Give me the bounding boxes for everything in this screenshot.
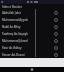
button[interactable]: Select Reciter [0,4,64,9]
button[interactable]: Yasser Ad-Dosari [0,51,64,58]
button[interactable]: Muhammad Jibreel [0,37,64,44]
staticText: Yasser Ad-Dosari [2,53,53,57]
button[interactable]: Nabil Ar-Rifay [0,23,64,30]
staticText: Tawfeeq As-Sayegh [2,32,53,36]
button[interactable]: Yasir Ar-Rafiay [0,44,64,51]
button[interactable]: Abdullah Jabir [0,9,64,16]
staticText: Select Reciter [2,5,23,9]
staticText: Abdullah Jabir [2,11,53,15]
staticText: Muhammad Jibreel [2,39,53,43]
button[interactable]: Muhammad Ayyub [0,16,64,23]
staticText: Nabil Ar-Rifay [2,25,53,29]
staticText: Yasir Ar-Rafiay [2,46,53,50]
button[interactable]: Tawfeeq As-Sayegh [0,30,64,37]
staticText: Muhammad Ayyub [2,18,53,22]
